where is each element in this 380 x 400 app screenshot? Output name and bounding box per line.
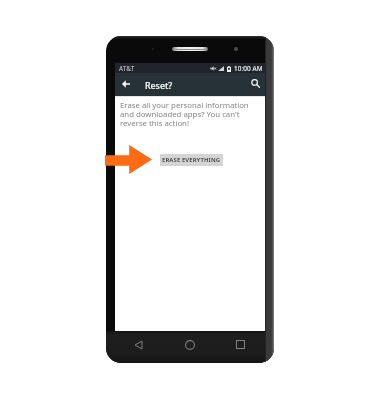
button[interactable]: Search xyxy=(247,73,263,96)
button[interactable]: ERASE EVERYTHING xyxy=(160,154,223,166)
staticText: 10:00 AM xyxy=(234,64,263,73)
staticText: AT&T xyxy=(119,64,135,73)
staticText: ERASE EVERYTHING xyxy=(162,156,221,164)
button[interactable]: Back xyxy=(132,338,145,351)
staticText: Erase all your personal information and … xyxy=(120,100,249,129)
button[interactable]: Recent apps xyxy=(234,338,247,351)
staticText: Reset? xyxy=(145,80,173,92)
button[interactable]: Home xyxy=(183,338,196,351)
button[interactable]: Navigate up xyxy=(119,73,135,96)
